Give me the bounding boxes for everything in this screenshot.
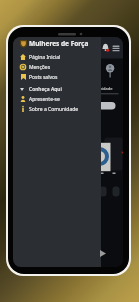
staticText: Conheça Aqui bbox=[29, 86, 62, 93]
staticText: unidade bbox=[97, 86, 113, 91]
staticText: Mulheres de Força bbox=[29, 39, 89, 48]
button[interactable]: Conheça Aqui bbox=[13, 84, 101, 94]
button[interactable]: Página Inicial bbox=[13, 52, 101, 62]
staticText: Página Inicial bbox=[29, 54, 61, 61]
staticText: Menções bbox=[29, 64, 51, 71]
button[interactable]: Menções bbox=[13, 62, 101, 72]
button[interactable]: Posts salvos bbox=[13, 72, 101, 82]
button[interactable]: Apresente-se bbox=[13, 94, 101, 104]
button[interactable]: Sobre a Comunidade bbox=[13, 104, 101, 114]
button[interactable]: Comunidade bbox=[97, 86, 117, 91]
staticText: Sobre a Comunidade bbox=[29, 106, 79, 113]
staticText: Apresente-se bbox=[29, 96, 60, 103]
staticText: Posts salvos bbox=[29, 74, 58, 81]
